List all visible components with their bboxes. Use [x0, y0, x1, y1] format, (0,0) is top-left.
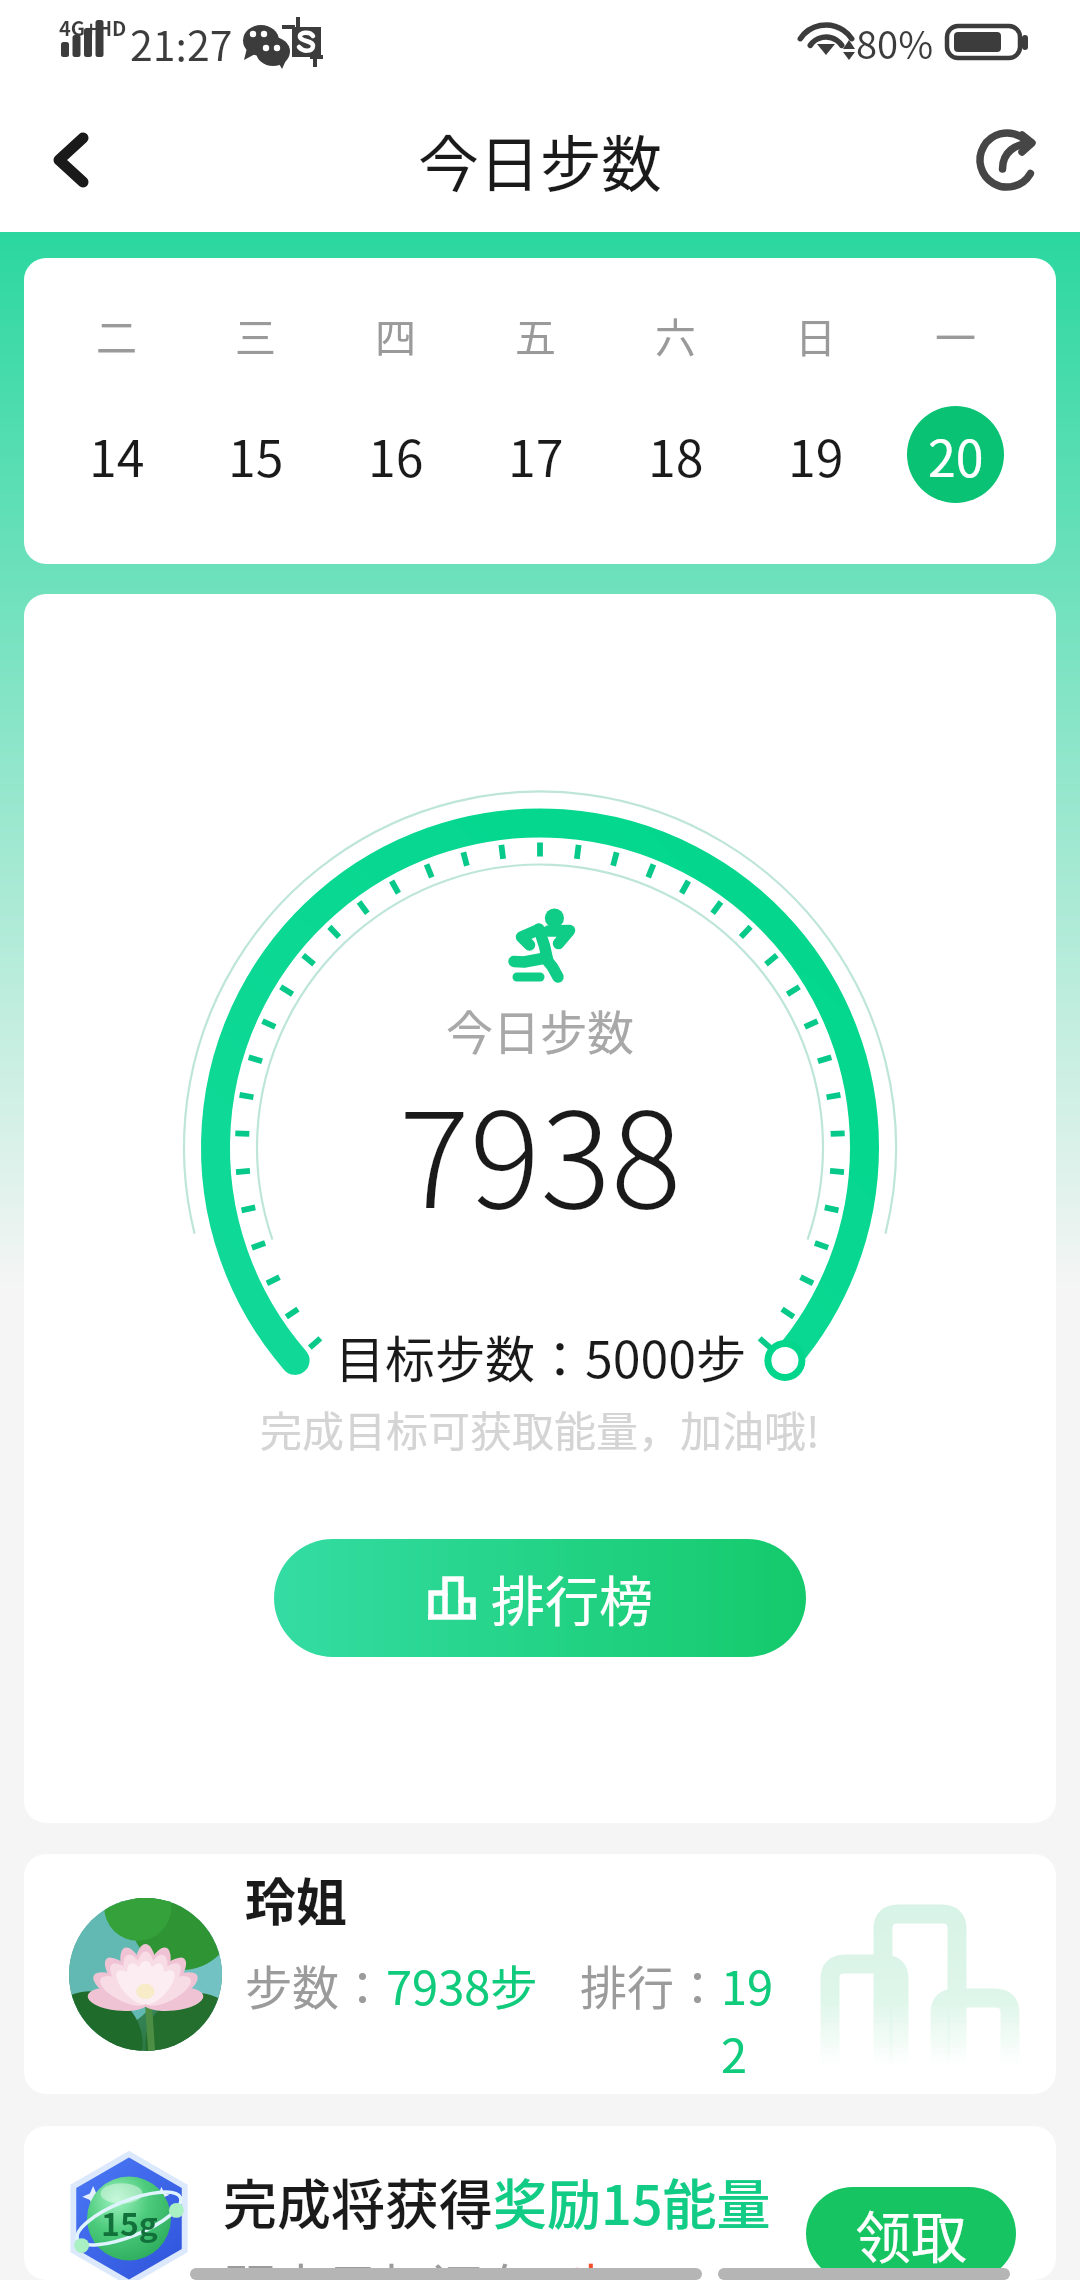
staticText: 今日步数	[446, 995, 634, 1063]
staticText: 21:27	[130, 13, 233, 72]
button[interactable]: 14	[68, 406, 165, 503]
button[interactable]: 排行榜	[274, 1539, 806, 1657]
staticText: 一	[935, 305, 976, 364]
button[interactable]: 15	[207, 406, 304, 503]
staticText: 五	[515, 305, 556, 364]
staticText: 二	[96, 305, 137, 364]
staticText: 步数：	[245, 1950, 386, 2018]
staticText: 奖励15能量	[493, 2162, 771, 2240]
button[interactable]: Back	[30, 120, 110, 200]
staticText: 日	[795, 305, 836, 364]
button[interactable]: 领取	[806, 2187, 1016, 2280]
staticText: 20	[928, 419, 984, 491]
staticText: 距离目标还有	[223, 2248, 536, 2280]
staticText: 排行：	[580, 1950, 721, 2018]
staticText: 三	[235, 305, 276, 364]
staticText: 15g	[101, 2199, 158, 2245]
staticText: 完成目标可获取能量，加油哦!	[260, 1398, 820, 1459]
button[interactable]: 19	[767, 406, 864, 503]
staticText: 完成将获得	[223, 2162, 493, 2240]
staticText: 玲姐	[245, 1862, 348, 1936]
button[interactable]: 17	[487, 406, 584, 503]
staticText: 7938	[399, 1055, 682, 1246]
staticText: 今日步数	[418, 116, 663, 204]
staticText: 四	[375, 305, 416, 364]
button[interactable]: 16	[347, 406, 444, 503]
staticText: 16	[368, 419, 424, 491]
staticText: 19	[788, 419, 844, 491]
staticText: 192	[721, 1950, 785, 2086]
button[interactable]: 20	[907, 406, 1004, 503]
staticText: 领取	[855, 2193, 967, 2274]
staticText: 排行榜	[491, 1559, 653, 1637]
staticText: 80%	[856, 15, 934, 70]
button[interactable]: 玲姐	[24, 1854, 1056, 2094]
button[interactable]: 18	[627, 406, 724, 503]
staticText: 0步	[536, 2248, 617, 2280]
staticText: 4G+HD	[59, 13, 127, 42]
staticText: 目标步数：5000步	[335, 1320, 746, 1392]
staticText: 15	[228, 419, 284, 491]
staticText: 14	[89, 419, 145, 491]
staticText: 18	[648, 419, 704, 491]
staticText: 六	[655, 305, 696, 364]
button[interactable]: Share	[967, 120, 1047, 200]
staticText: 17	[508, 419, 564, 491]
staticText: 7938步	[386, 1950, 538, 2018]
